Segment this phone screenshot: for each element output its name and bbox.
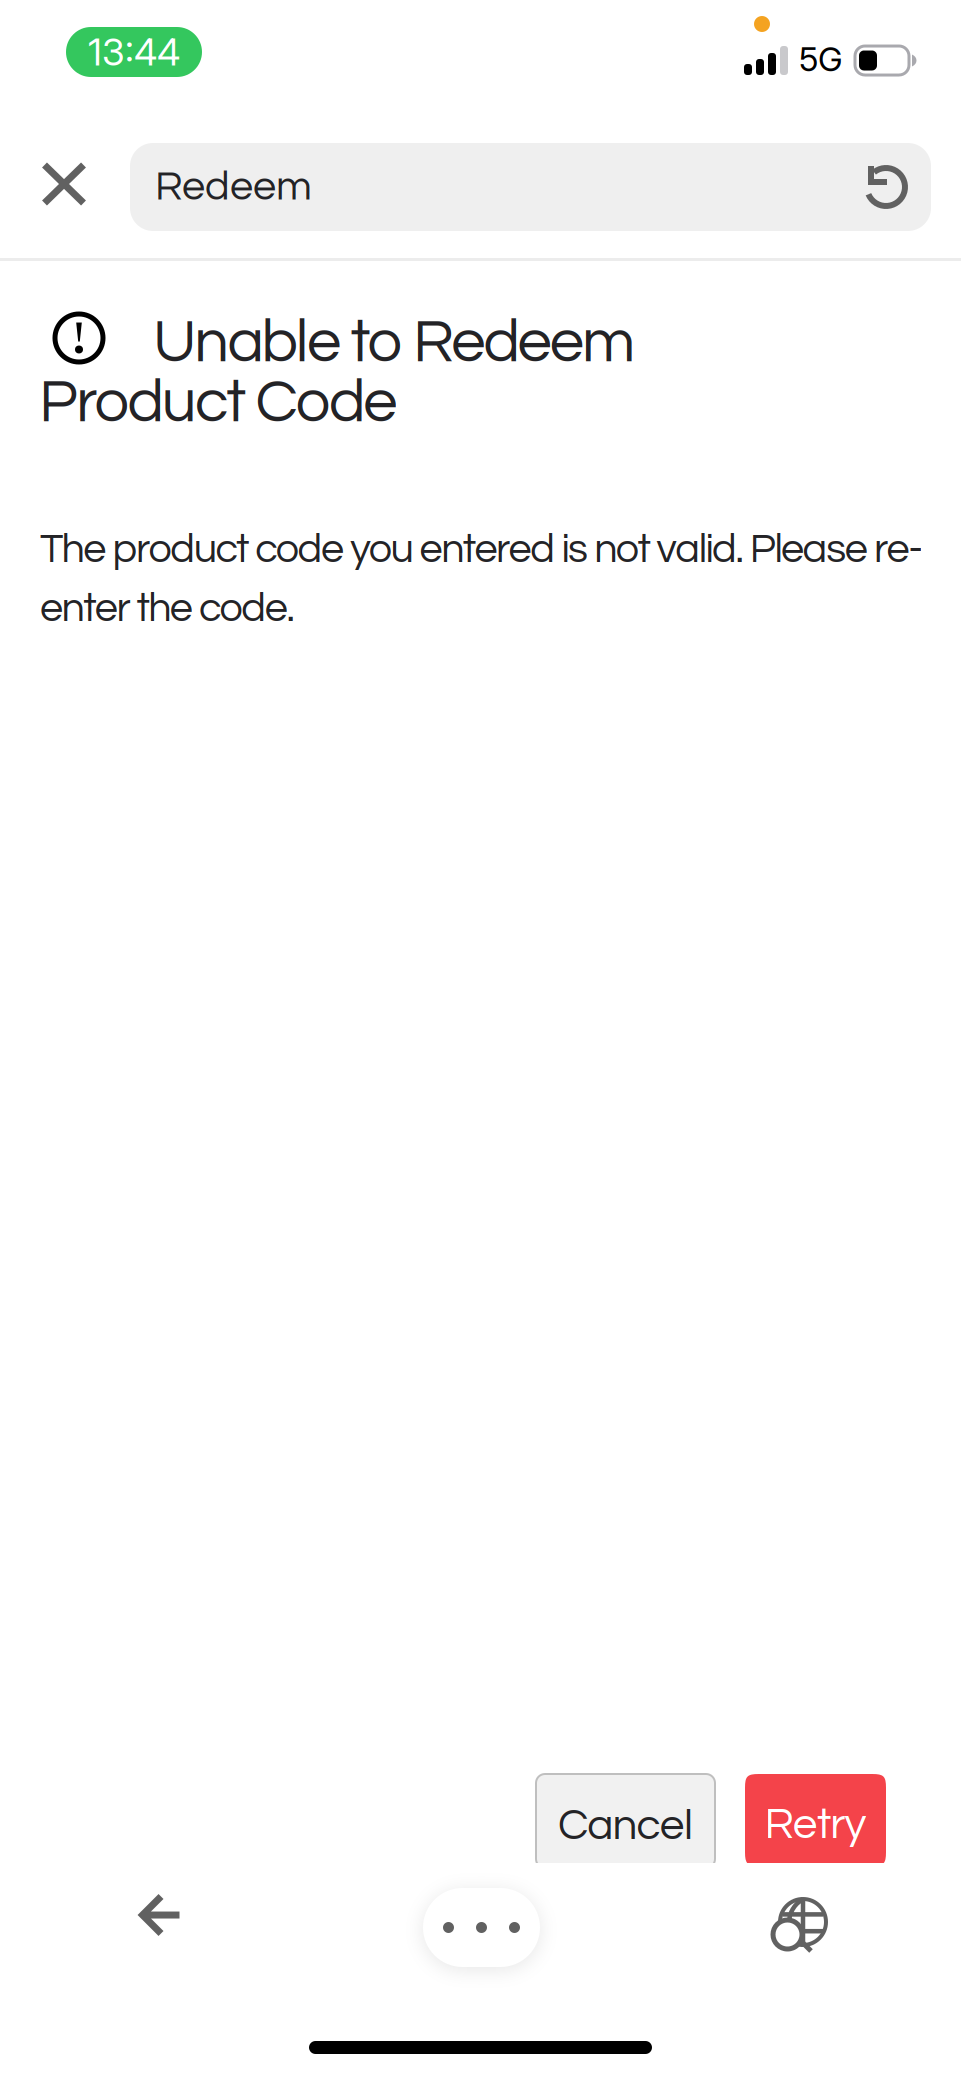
button[interactable]: Reload — [838, 143, 934, 231]
button[interactable]: Back — [101, 1863, 221, 1967]
staticText: enter the code. — [40, 587, 294, 630]
staticText: Unable to Redeem — [153, 311, 635, 374]
staticText: 13:44 — [88, 29, 180, 75]
button[interactable]: More — [423, 1888, 540, 1967]
staticText: Redeem — [155, 166, 312, 208]
staticText: Cancel — [558, 1803, 693, 1848]
staticText: Retry — [765, 1802, 866, 1847]
button[interactable]: Retry — [745, 1774, 886, 1866]
staticText: Product Code — [39, 371, 397, 434]
button[interactable]: Close — [0, 110, 128, 258]
staticText: 5G — [799, 39, 843, 79]
staticText: The product code you entered is not vali… — [40, 528, 923, 571]
button[interactable]: Open in browser — [741, 1863, 861, 1967]
button[interactable]: Cancel — [536, 1774, 715, 1868]
